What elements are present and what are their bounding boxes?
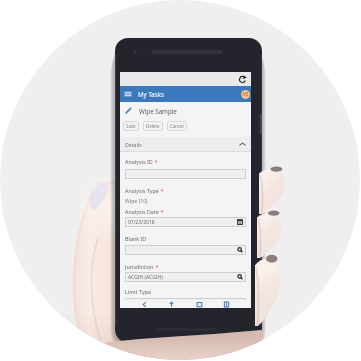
button[interactable]: ACGIH (ACGIH) [125,272,246,282]
staticText: Jurisdiction [125,263,154,270]
staticText: * [154,263,159,270]
button[interactable]: share [168,301,175,308]
staticText: Blank ID [125,235,147,242]
other: Search [237,247,243,253]
button[interactable]: Reload page [238,75,247,84]
button[interactable]: 07/23/2018 [125,217,246,227]
button[interactable]: Wipe Sample [120,105,251,116]
button[interactable] [125,298,246,308]
button[interactable] [125,169,246,179]
staticText: Save [126,123,136,129]
staticText: My Tasks [138,90,165,98]
button[interactable]: Save [123,121,139,131]
staticText: * [159,208,164,215]
staticText: Limit Type [125,288,151,295]
staticText: * [159,187,164,194]
button[interactable]: Details [120,137,251,151]
staticText: Wipe Sample [139,107,177,115]
staticText: Wipe (10) [125,197,148,204]
button[interactable]: Account [241,90,250,99]
staticText: 07/23/2018 [128,219,155,226]
button[interactable]: Delete [143,121,163,131]
button[interactable]: Cancel [167,121,187,131]
staticText: Delete [146,123,160,129]
staticText: ACGIH (ACGIH) [128,274,163,281]
button[interactable]: Open navigation menu [124,90,132,98]
staticText: * [153,158,158,165]
staticText: Analysis Date [125,208,159,215]
staticText: Cancel [170,123,184,129]
other: Search [237,274,243,280]
button[interactable]: back [141,301,148,308]
staticText: Analysis ID [125,158,153,165]
button[interactable]: tabs [196,301,203,308]
other: Pick date [237,219,243,225]
button[interactable]: Search [125,245,246,255]
staticText: Details [125,141,142,148]
button[interactable]: book [223,301,230,308]
staticText: Analysis Type [125,187,159,194]
staticText: AB [242,91,249,98]
